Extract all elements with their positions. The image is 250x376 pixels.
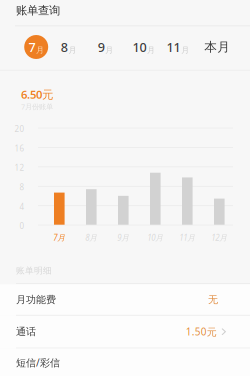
staticText: 月 bbox=[147, 45, 155, 55]
staticText: 12月 bbox=[211, 232, 227, 243]
staticText: 月 bbox=[181, 45, 189, 55]
button[interactable]: 9 bbox=[88, 32, 122, 62]
button[interactable]: 11 bbox=[161, 32, 195, 62]
button[interactable]: 短信/彩信 bbox=[0, 348, 250, 376]
staticText: 7月份账单 bbox=[21, 102, 53, 112]
button[interactable]: 7 bbox=[19, 32, 53, 62]
staticText: 无 bbox=[208, 293, 218, 306]
button[interactable]: 月功能费 bbox=[0, 284, 250, 316]
staticText: 7月 bbox=[53, 232, 65, 243]
staticText: 10 bbox=[132, 38, 146, 56]
button[interactable]: 8 bbox=[52, 32, 86, 62]
button[interactable]: 通话 bbox=[0, 316, 250, 348]
staticText: 16 bbox=[15, 143, 25, 154]
staticText: 7 bbox=[28, 38, 35, 56]
staticText: 9月 bbox=[117, 232, 129, 243]
staticText: 月 bbox=[68, 45, 76, 55]
button[interactable]: 本月 bbox=[200, 32, 234, 62]
staticText: 短信/彩信 bbox=[16, 356, 60, 369]
staticText: 本月 bbox=[204, 39, 230, 55]
staticText: 8月 bbox=[85, 232, 97, 243]
staticText: 8 bbox=[61, 38, 68, 56]
staticText: 通话 bbox=[16, 325, 36, 338]
staticText: 12 bbox=[15, 162, 25, 173]
staticText: 10月 bbox=[147, 232, 163, 243]
staticText: 6.50元 bbox=[21, 87, 53, 102]
staticText: 账单明细 bbox=[16, 265, 52, 276]
button[interactable]: 10 bbox=[127, 32, 161, 62]
staticText: 4 bbox=[20, 201, 25, 212]
staticText: 9 bbox=[98, 38, 105, 56]
staticText: 20 bbox=[15, 123, 25, 134]
staticText: 8 bbox=[20, 182, 25, 193]
staticText: 11 bbox=[167, 38, 181, 56]
staticText: 0 bbox=[20, 220, 25, 231]
staticText: 11月 bbox=[179, 232, 195, 243]
staticText: 月 bbox=[36, 45, 44, 55]
staticText: 月功能费 bbox=[16, 293, 56, 306]
staticText: 账单查询 bbox=[16, 3, 60, 18]
staticText: 月 bbox=[105, 45, 113, 55]
staticText: 1.50元 bbox=[186, 325, 217, 338]
